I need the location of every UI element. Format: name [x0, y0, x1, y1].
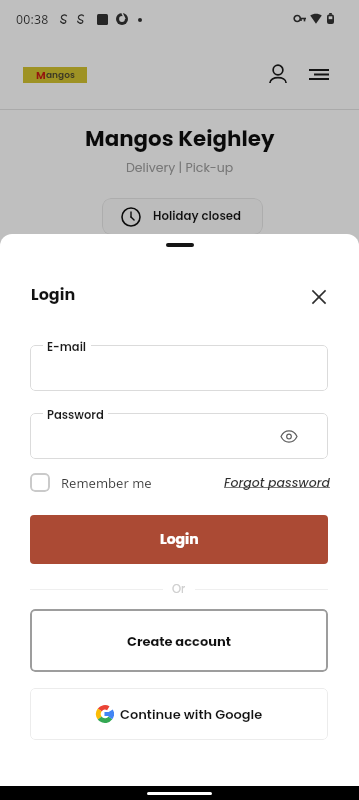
button[interactable]: Login — [30, 515, 328, 564]
button[interactable]: Close — [304, 282, 333, 311]
staticText: Forgot password — [224, 474, 330, 491]
button[interactable]: Holiday closed — [102, 198, 263, 235]
staticText: Holiday closed — [153, 208, 242, 225]
staticText: Create account — [127, 632, 231, 650]
staticText: M — [36, 68, 46, 83]
button[interactable]: Show password — [278, 425, 300, 447]
staticText: angos — [46, 69, 75, 82]
staticText: Or — [172, 581, 186, 597]
staticText: Password — [47, 407, 104, 423]
staticText: Login — [160, 529, 199, 549]
staticText: Login — [31, 283, 76, 305]
staticText: Continue with Google — [120, 705, 263, 723]
staticText: E-mail — [47, 339, 87, 355]
button[interactable]: Continue with Google — [30, 688, 328, 740]
button[interactable] — [30, 413, 328, 459]
staticText: Remember me — [61, 474, 152, 492]
staticText: Delivery | Pick-up — [126, 159, 234, 176]
button[interactable]: Remember me — [30, 473, 152, 492]
button[interactable]: Mangos home — [23, 67, 87, 83]
button[interactable] — [30, 345, 328, 391]
button[interactable]: Account — [262, 58, 294, 90]
button[interactable]: Create account — [30, 609, 328, 672]
staticText: 00:38 — [16, 11, 49, 28]
button[interactable]: Forgot password — [224, 474, 330, 491]
staticText: Mangos Keighley — [85, 124, 275, 154]
button[interactable]: Menu — [303, 58, 335, 90]
